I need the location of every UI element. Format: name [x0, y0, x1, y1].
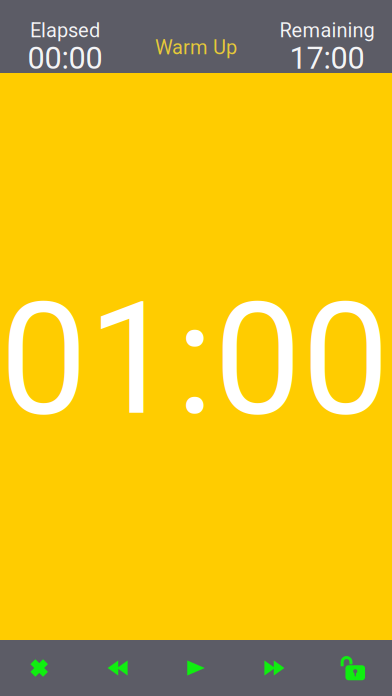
- staticText: Remaining: [279, 19, 374, 42]
- button[interactable]: Stop: [0, 640, 78, 696]
- button[interactable]: Next interval: [235, 640, 314, 696]
- staticText: 01:00: [0, 268, 390, 451]
- button[interactable]: Start: [157, 640, 235, 696]
- button[interactable]: Lock screen: [314, 640, 392, 696]
- staticText: 00:00: [27, 40, 102, 76]
- staticText: Warm Up: [155, 36, 237, 59]
- staticText: 17:00: [289, 40, 364, 76]
- button[interactable]: Previous interval: [78, 640, 157, 696]
- staticText: Elapsed: [30, 19, 100, 42]
